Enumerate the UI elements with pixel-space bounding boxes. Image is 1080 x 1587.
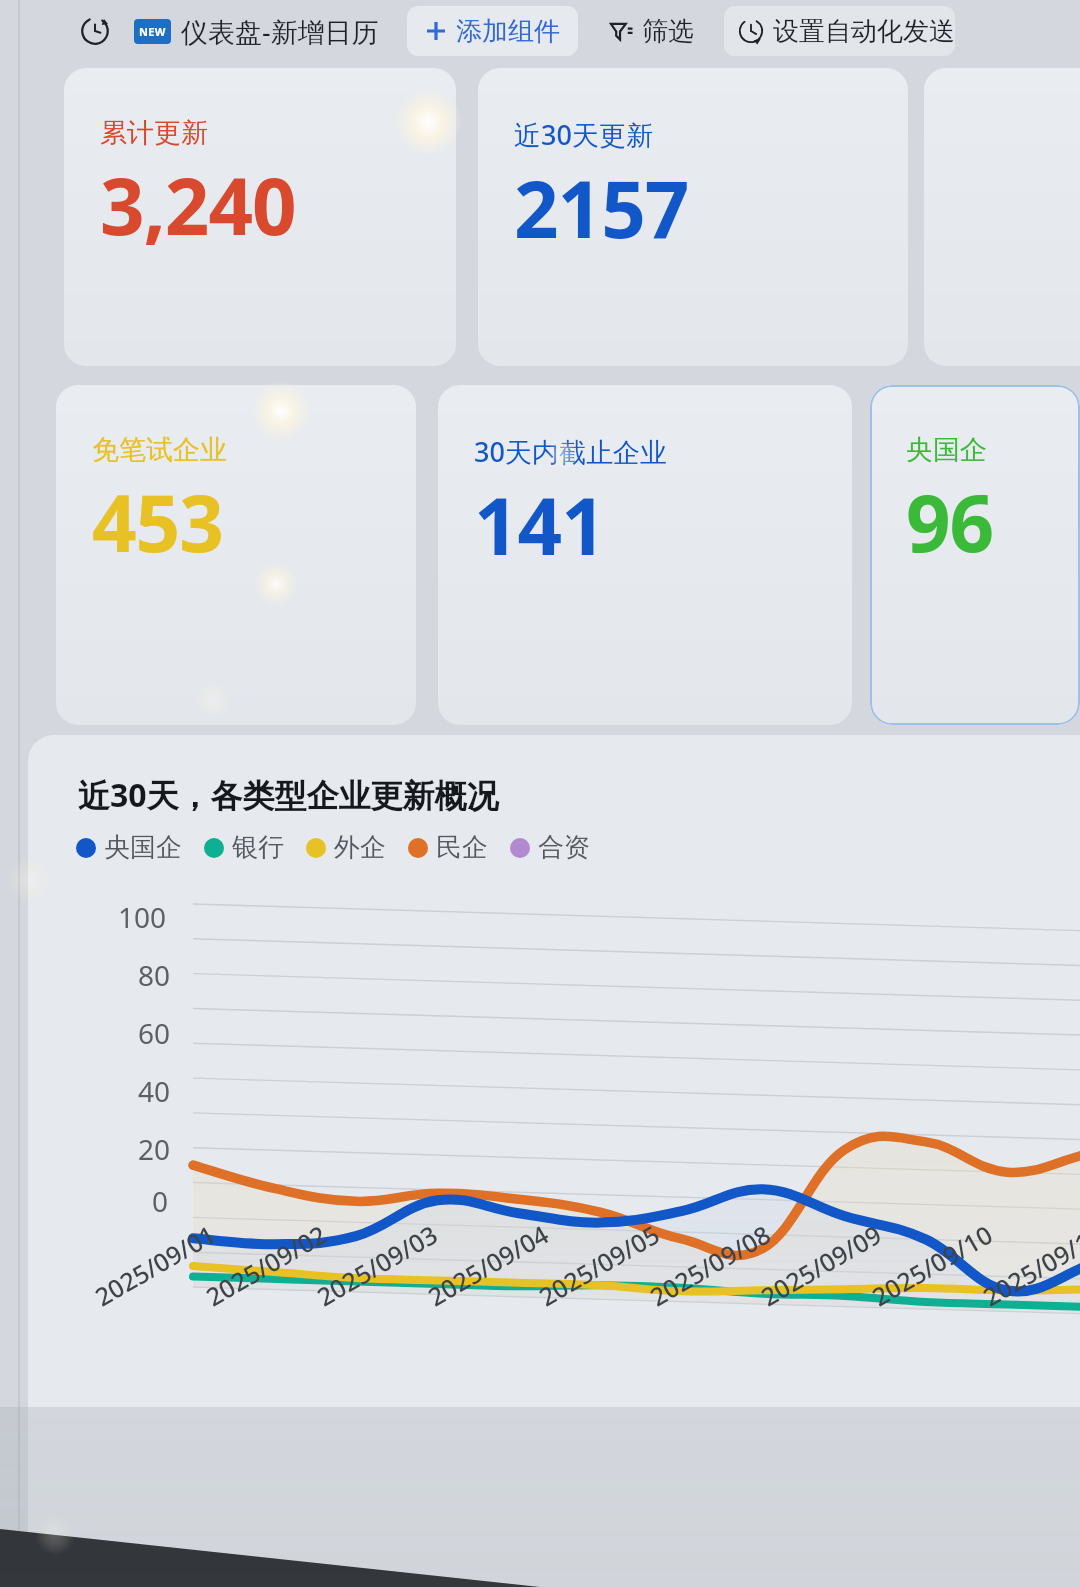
staticText: 免笔试企业 <box>92 433 227 467</box>
staticText: 80 <box>138 956 171 994</box>
button[interactable]: 央国企 <box>72 831 186 864</box>
button[interactable]: 央国企 <box>870 385 1080 725</box>
staticText: 453 <box>92 469 223 575</box>
button[interactable]: 设置自动化发送 <box>724 6 955 56</box>
staticText: 筛选 <box>642 15 694 48</box>
staticText: 近30天更新 <box>514 116 653 153</box>
staticText: NEW <box>139 24 166 39</box>
staticText: 外企 <box>334 831 386 864</box>
staticText: 设置自动化发送 <box>773 15 955 48</box>
staticText: 0 <box>152 1182 169 1220</box>
staticText: 3,240 <box>100 152 296 258</box>
staticText: 141 <box>474 472 605 578</box>
staticText: 央国企 <box>104 831 182 864</box>
staticText: 2157 <box>514 155 689 261</box>
button[interactable]: 30天内截止企业 <box>438 385 852 725</box>
staticText: 2025/09/03 <box>310 1217 443 1313</box>
staticText: 2025/09/01 <box>88 1217 221 1313</box>
staticText: 2025/09/04 <box>421 1217 554 1313</box>
staticText: 30天内截止企业 <box>474 433 667 470</box>
button[interactable]: 添加组件 <box>407 6 578 56</box>
button[interactable]: History <box>78 14 112 48</box>
button[interactable]: 银行 <box>200 831 288 864</box>
button[interactable]: 近30天更新 <box>478 68 908 366</box>
staticText: 累计更新 <box>100 116 208 150</box>
staticText: 合资 <box>538 831 590 864</box>
staticText: 2025/09/09 <box>754 1217 887 1313</box>
staticText: 2025/09/10 <box>865 1217 998 1313</box>
staticText: 20 <box>138 1130 171 1168</box>
staticText: 40 <box>138 1072 171 1110</box>
button[interactable]: 外企 <box>302 831 390 864</box>
staticText: 添加组件 <box>456 15 560 48</box>
staticText: 近30天，各类型企业更新概况 <box>78 773 499 817</box>
staticText: 2025/09/08 <box>643 1217 776 1313</box>
staticText: 2025/09/11 <box>976 1217 1080 1313</box>
staticText: 2025/09/02 <box>199 1217 332 1313</box>
button[interactable]: 合资 <box>506 831 594 864</box>
staticText: 银行 <box>232 831 284 864</box>
staticText: 央国企 <box>906 433 987 467</box>
button[interactable]: 筛选 <box>601 6 702 56</box>
staticText: 60 <box>138 1014 171 1052</box>
staticText: 民企 <box>436 831 488 864</box>
button[interactable]: 免笔试企业 <box>56 385 416 725</box>
staticText: 2025/09/05 <box>532 1217 665 1313</box>
button[interactable]: NEW <box>134 13 379 50</box>
button[interactable]: 民企 <box>404 831 492 864</box>
button[interactable]: 累计更新 <box>64 68 456 366</box>
staticText: 100 <box>118 898 167 936</box>
staticText: 仪表盘-新增日历 <box>181 13 379 50</box>
staticText: 96 <box>906 469 994 575</box>
